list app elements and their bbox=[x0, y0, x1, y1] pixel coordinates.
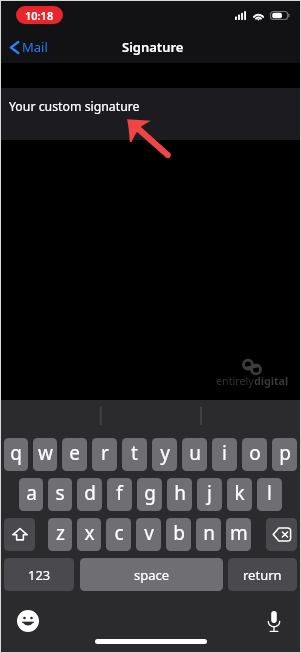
button[interactable]: k bbox=[227, 478, 252, 511]
staticText: Signature bbox=[122, 38, 184, 56]
button[interactable]: v bbox=[136, 518, 161, 551]
button[interactable]: j bbox=[197, 478, 222, 511]
staticText: n bbox=[203, 520, 215, 546]
button[interactable]: z bbox=[48, 518, 72, 551]
button[interactable]: d bbox=[77, 478, 102, 511]
button[interactable]: m bbox=[226, 518, 251, 551]
staticText: a bbox=[26, 480, 37, 506]
staticText: c bbox=[114, 520, 124, 546]
button[interactable]: return bbox=[228, 558, 297, 591]
staticText: j bbox=[207, 480, 212, 506]
staticText: g bbox=[144, 480, 156, 506]
staticText: 123 bbox=[28, 566, 51, 584]
button[interactable]: Emoji keyboard bbox=[14, 607, 42, 635]
staticText: h bbox=[174, 480, 186, 506]
staticText: m bbox=[230, 520, 248, 546]
button[interactable]: e bbox=[62, 438, 87, 471]
button[interactable]: q bbox=[4, 438, 28, 471]
button[interactable]: x bbox=[77, 518, 101, 551]
staticText: k bbox=[234, 480, 245, 506]
button[interactable]: l bbox=[257, 478, 282, 511]
staticText: d bbox=[84, 480, 96, 506]
staticText: return bbox=[243, 566, 282, 584]
button[interactable]: a bbox=[19, 478, 43, 511]
staticText: entirely bbox=[216, 374, 254, 389]
button[interactable]: t bbox=[122, 438, 147, 471]
button[interactable]: y bbox=[152, 438, 177, 471]
staticText: Mail bbox=[22, 38, 48, 56]
button[interactable]: w bbox=[33, 438, 57, 471]
staticText: l bbox=[267, 480, 272, 506]
button[interactable]: space bbox=[80, 558, 223, 591]
button[interactable]: s bbox=[48, 478, 72, 511]
staticText: q bbox=[10, 440, 22, 466]
staticText: v bbox=[144, 520, 154, 546]
staticText: z bbox=[56, 520, 65, 546]
staticText: s bbox=[55, 480, 65, 506]
staticText: p bbox=[279, 440, 291, 466]
staticText: r bbox=[101, 440, 109, 466]
staticText: y bbox=[160, 440, 170, 466]
button[interactable]: Shift bbox=[4, 518, 35, 551]
button[interactable]: n bbox=[196, 518, 221, 551]
staticText: u bbox=[189, 440, 201, 466]
button[interactable]: p bbox=[272, 438, 297, 471]
staticText: o bbox=[249, 440, 261, 466]
staticText: f bbox=[116, 480, 123, 506]
staticText: Your custom signature bbox=[9, 98, 140, 115]
staticText: b bbox=[173, 520, 185, 546]
button[interactable]: Your custom signature bbox=[0, 88, 301, 140]
button[interactable]: f bbox=[107, 478, 132, 511]
button[interactable]: c bbox=[106, 518, 131, 551]
button[interactable]: b bbox=[166, 518, 191, 551]
button[interactable]: i bbox=[212, 438, 237, 471]
button[interactable]: u bbox=[182, 438, 207, 471]
button[interactable]: Mail bbox=[0, 33, 56, 61]
button[interactable]: h bbox=[167, 478, 192, 511]
staticText: x bbox=[84, 520, 95, 546]
staticText: t bbox=[131, 440, 138, 466]
button[interactable]: Delete bbox=[266, 518, 297, 551]
staticText: space bbox=[134, 566, 170, 584]
button[interactable]: 123 bbox=[4, 558, 74, 591]
staticText: digital bbox=[254, 374, 289, 389]
staticText: i bbox=[222, 440, 227, 466]
staticText: w bbox=[38, 440, 53, 466]
button[interactable]: r bbox=[92, 438, 117, 471]
button[interactable]: o bbox=[242, 438, 267, 471]
button[interactable]: Dictate bbox=[260, 607, 288, 635]
button[interactable]: g bbox=[137, 478, 162, 511]
staticText: 10:18 bbox=[25, 8, 54, 23]
staticText: e bbox=[69, 440, 80, 466]
